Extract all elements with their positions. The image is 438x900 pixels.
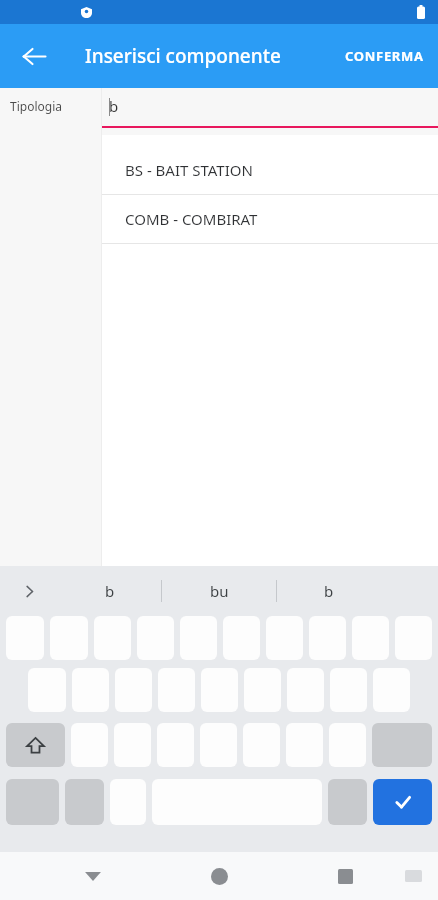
- button[interactable]: Back: [10, 32, 58, 80]
- button[interactable]: Shift: [6, 723, 65, 767]
- staticText: BS - BAIT STATION: [125, 160, 253, 180]
- staticText: COMB - COMBIRAT: [125, 209, 258, 229]
- staticText: b: [109, 96, 119, 116]
- button[interactable]: b: [102, 88, 438, 135]
- button[interactable]: b: [277, 566, 380, 616]
- button[interactable]: Emoji: [65, 779, 104, 825]
- button[interactable]: Backspace: [372, 723, 432, 767]
- button[interactable]: Hide keyboard: [71, 854, 115, 898]
- button[interactable]: Enter: [373, 779, 432, 825]
- button[interactable]: Symbols: [6, 779, 59, 825]
- staticText: Inserisci componente: [85, 43, 281, 69]
- button[interactable]: BS - BAIT STATION: [102, 146, 438, 194]
- button[interactable]: Switch keyboard: [395, 858, 431, 894]
- staticText: b: [324, 581, 334, 601]
- button[interactable]: More suggestions: [0, 566, 58, 616]
- button[interactable]: COMB - COMBIRAT: [102, 195, 438, 243]
- staticText: CONFERMA: [345, 47, 424, 65]
- button[interactable]: Recents: [323, 854, 367, 898]
- button[interactable]: bu: [162, 566, 276, 616]
- button[interactable]: Period: [328, 779, 367, 825]
- staticText: Tipologia: [10, 98, 62, 114]
- button[interactable]: Home: [197, 854, 241, 898]
- button[interactable]: b: [58, 566, 161, 616]
- staticText: b: [105, 581, 115, 601]
- button[interactable]: CONFERMA: [335, 35, 434, 77]
- staticText: bu: [210, 581, 229, 601]
